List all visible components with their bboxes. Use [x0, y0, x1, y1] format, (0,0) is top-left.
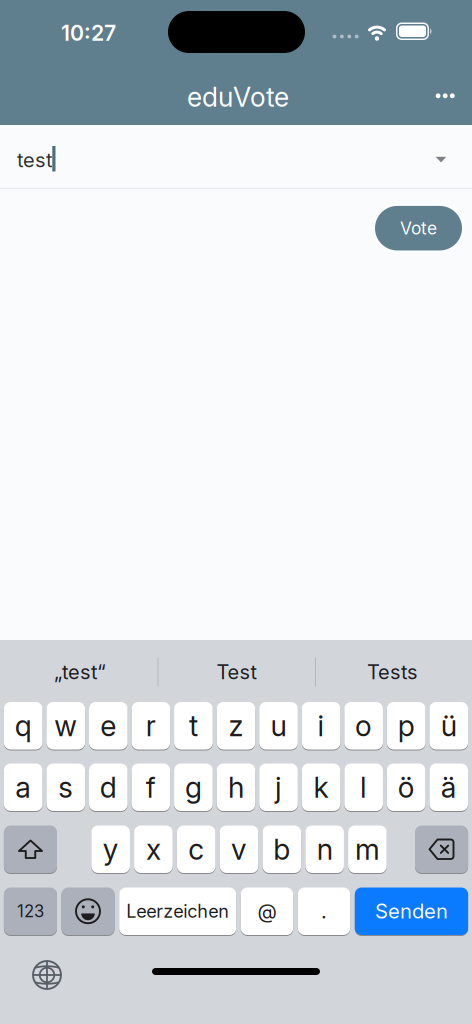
staticText: Senden — [375, 899, 448, 923]
staticText: . — [321, 899, 327, 923]
staticText: q — [15, 708, 32, 743]
staticText: m — [355, 832, 380, 867]
staticText: l — [360, 770, 367, 805]
staticText: ö — [398, 770, 415, 805]
staticText: test — [17, 148, 53, 172]
staticText: k — [314, 770, 329, 805]
staticText: y — [103, 832, 119, 867]
staticText: Test — [216, 660, 257, 684]
staticText: j — [275, 770, 282, 805]
staticText: Vote — [400, 218, 437, 239]
staticText: h — [228, 770, 244, 805]
staticText: 123 — [17, 901, 44, 921]
staticText: r — [146, 708, 156, 743]
staticText: w — [54, 708, 77, 743]
staticText: p — [398, 708, 415, 743]
staticText: @ — [257, 899, 276, 923]
staticText: e — [100, 708, 116, 743]
staticText: s — [58, 770, 73, 805]
staticText: Tests — [367, 660, 417, 684]
staticText: t — [189, 708, 198, 743]
staticText: z — [228, 708, 243, 743]
staticText: u — [270, 708, 286, 743]
staticText: ü — [441, 708, 457, 743]
staticText: g — [185, 770, 202, 805]
staticText: ä — [441, 770, 457, 805]
staticText: c — [188, 832, 204, 867]
staticText: eduVote — [187, 81, 289, 113]
staticText: o — [355, 708, 372, 743]
staticText: 10:27 — [61, 20, 116, 46]
staticText: d — [100, 770, 117, 805]
staticText: a — [15, 770, 31, 805]
staticText: i — [318, 708, 325, 743]
staticText: b — [273, 832, 290, 867]
staticText: Leerzeichen — [126, 900, 229, 922]
staticText: v — [231, 832, 247, 867]
staticText: „test“ — [54, 660, 106, 684]
staticText: x — [146, 832, 161, 867]
staticText: n — [317, 832, 333, 867]
staticText: f — [146, 770, 156, 805]
